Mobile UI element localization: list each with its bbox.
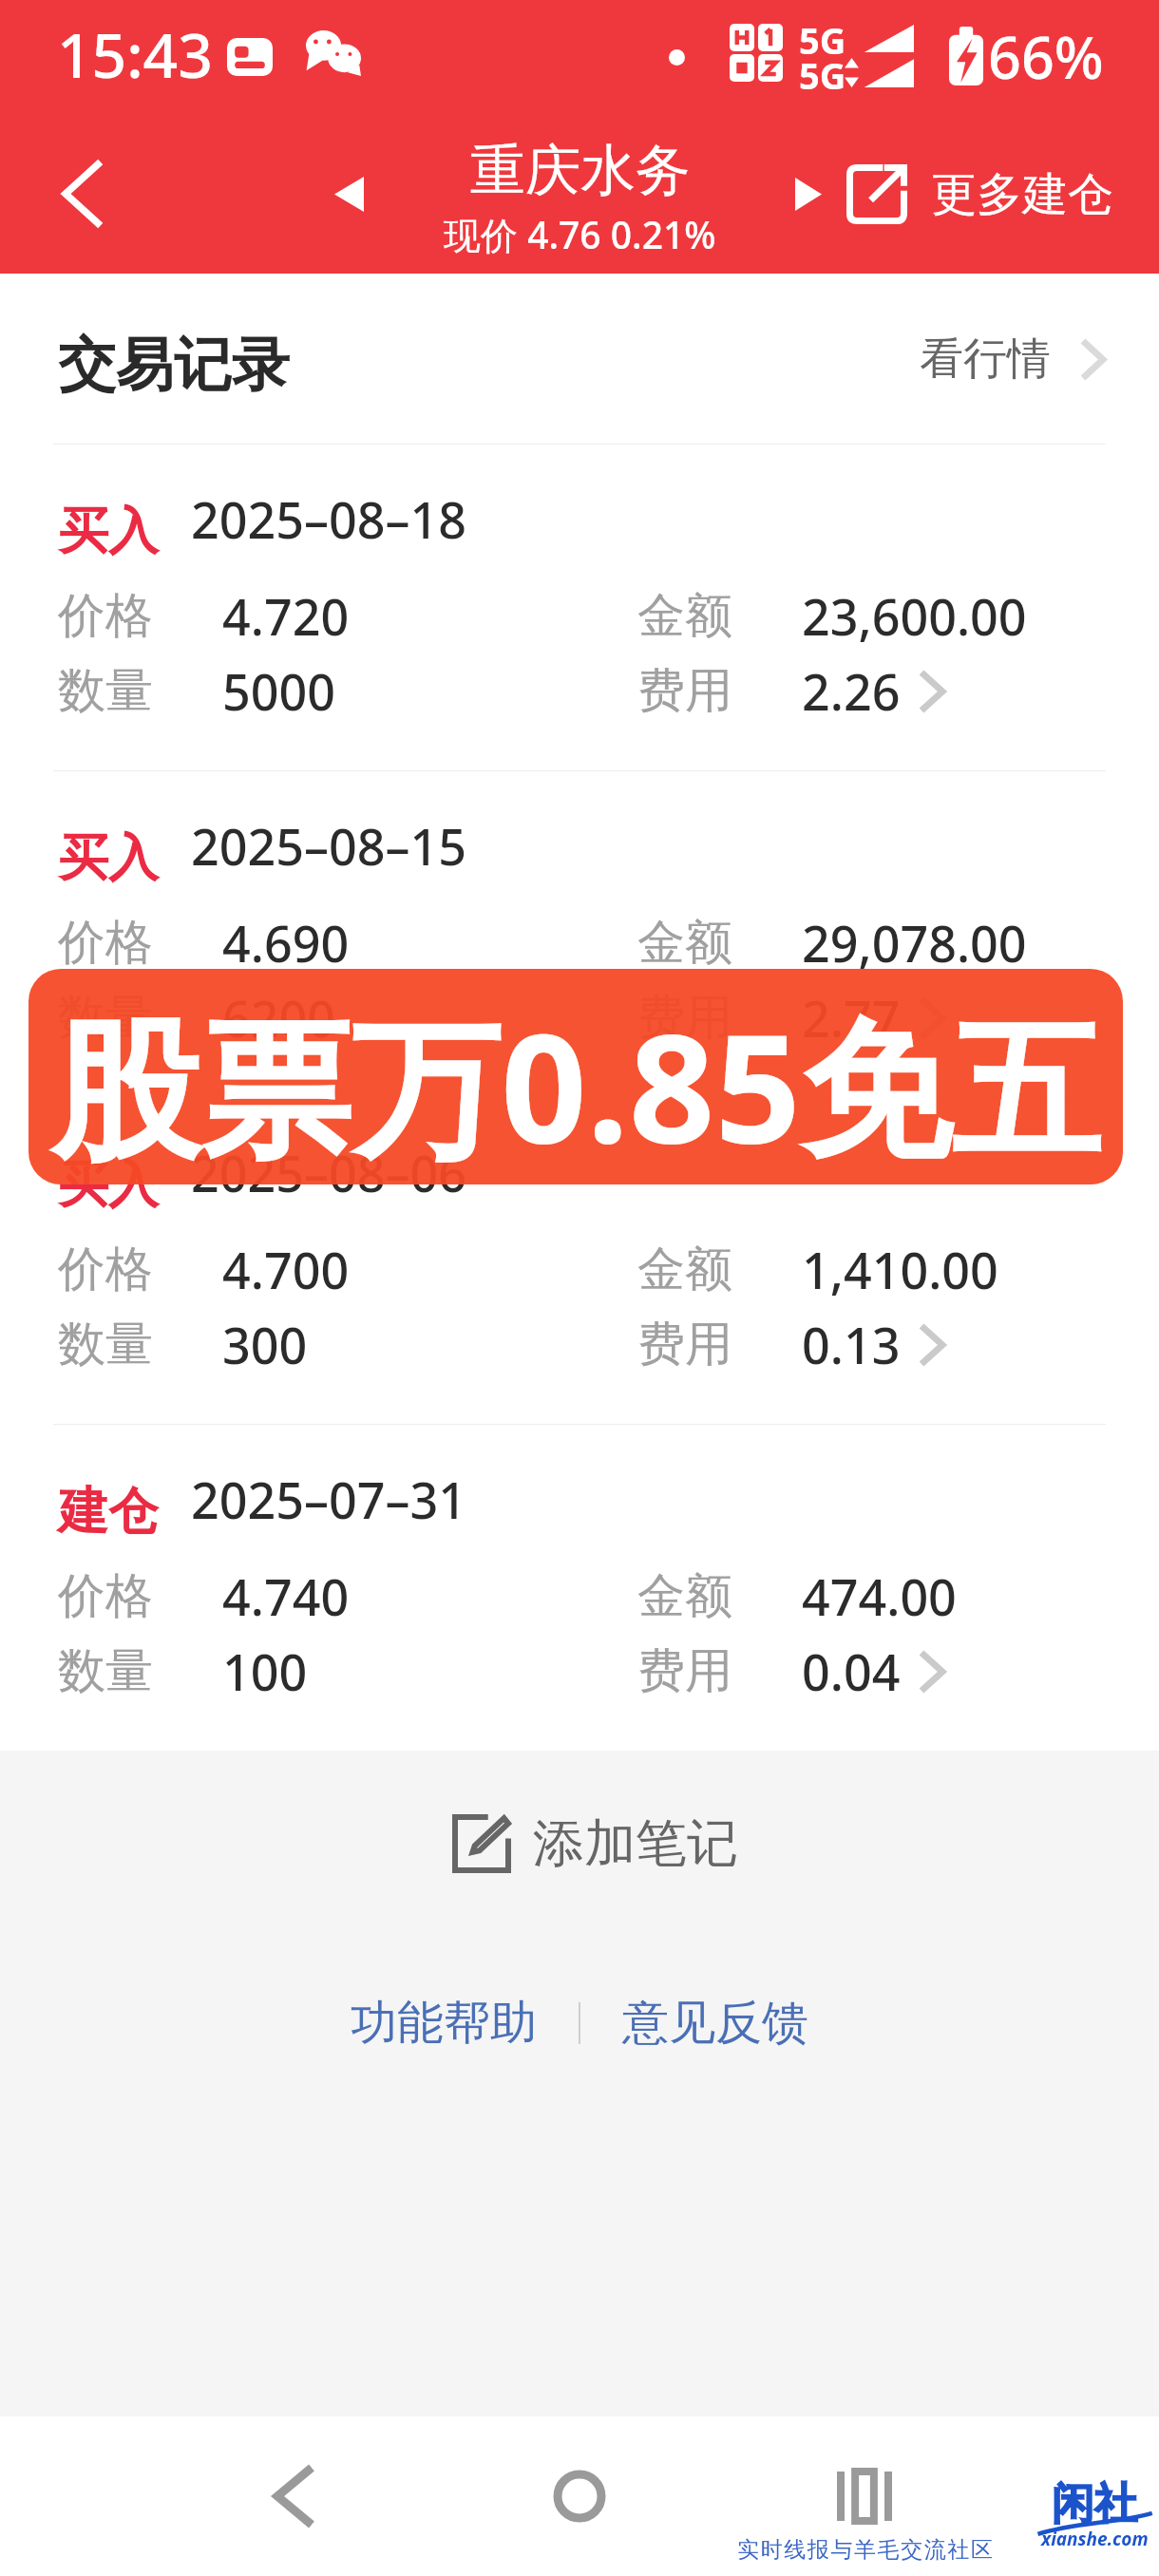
staticText: 买入 <box>58 1153 159 1217</box>
staticText: 4.720 <box>222 582 350 650</box>
staticText: 现价 4.76 0.21% <box>444 209 716 259</box>
staticText: 价格 <box>58 586 153 646</box>
staticText: xianshe.com <box>1041 2527 1149 2551</box>
staticText: 5000 <box>222 657 335 725</box>
staticText: 2025–08–06 <box>191 1139 466 1206</box>
button[interactable]: Recents <box>817 2449 912 2544</box>
button[interactable]: 意见反馈 <box>617 1986 814 2060</box>
staticText: 474.00 <box>802 1563 957 1630</box>
staticText: 金额 <box>637 1566 732 1626</box>
staticText: 数量 <box>58 1315 153 1374</box>
button[interactable]: 买入 <box>0 1098 1159 1424</box>
staticText: 价格 <box>58 1566 153 1626</box>
staticText: 买入 <box>58 500 159 563</box>
staticText: 闲社 <box>1052 2477 1137 2531</box>
staticText: 建仓 <box>58 1480 159 1544</box>
staticText: 6200 <box>222 984 335 1051</box>
staticText: 价格 <box>58 1240 153 1299</box>
button[interactable]: 买入 <box>0 771 1159 1097</box>
staticText: 4.690 <box>222 909 350 976</box>
staticText: 添加笔记 <box>533 1811 738 1876</box>
button[interactable]: 更多建仓 <box>846 164 1113 224</box>
button[interactable]: 看行情 <box>920 331 1103 387</box>
staticText: 66% <box>988 17 1104 96</box>
staticText: 交易记录 <box>58 329 290 402</box>
staticText: 股票万0.85免五 <box>50 982 1101 1184</box>
button[interactable]: 买入 <box>0 445 1159 770</box>
staticText: 2025–08–15 <box>191 812 466 880</box>
staticText: 看行情 <box>920 331 1051 387</box>
staticText: 1,410.00 <box>802 1236 998 1303</box>
staticText: 重庆水务 <box>470 136 691 205</box>
button[interactable]: Back <box>38 150 125 237</box>
staticText: 买入 <box>58 826 159 890</box>
staticText: 23,600.00 <box>802 582 1027 650</box>
button[interactable]: 添加笔记 <box>436 1804 757 1884</box>
staticText: 费用 <box>637 1641 732 1701</box>
staticText: 2.26 <box>802 657 901 725</box>
staticText: 0.04 <box>802 1638 901 1705</box>
staticText: 费用 <box>637 988 732 1048</box>
staticText: 费用 <box>637 661 732 721</box>
staticText: 0.13 <box>802 1311 901 1378</box>
button[interactable]: Next <box>765 150 852 237</box>
staticText: 金额 <box>637 913 732 973</box>
staticText: 费用 <box>637 1315 732 1374</box>
staticText: 价格 <box>58 913 153 973</box>
staticText: 2025–08–18 <box>191 485 466 553</box>
staticText: 300 <box>222 1311 308 1378</box>
staticText: 29,078.00 <box>802 909 1027 976</box>
button[interactable]: 功能帮助 <box>345 1986 542 2060</box>
button[interactable]: 建仓 <box>0 1425 1159 1751</box>
staticText: 4.740 <box>222 1563 350 1630</box>
staticText: 数量 <box>58 661 153 721</box>
button[interactable]: Home <box>532 2449 627 2544</box>
staticText: 数量 <box>58 1641 153 1701</box>
staticText: 金额 <box>637 1240 732 1299</box>
staticText: 5G <box>799 50 846 100</box>
staticText: 实时线报与羊毛交流社区 <box>737 2536 995 2564</box>
staticText: 金额 <box>637 586 732 646</box>
staticText: 15:43 <box>57 13 213 96</box>
button[interactable]: Back <box>247 2449 342 2544</box>
staticText: 更多建仓 <box>931 166 1113 223</box>
staticText: 2025–07–31 <box>191 1466 466 1533</box>
staticText: 4.700 <box>222 1236 350 1303</box>
staticText: 数量 <box>58 988 153 1048</box>
button[interactable]: Previous <box>305 150 392 237</box>
staticText: 2.77 <box>802 984 901 1051</box>
staticText: 5G <box>799 15 846 65</box>
staticText: 100 <box>222 1638 308 1705</box>
